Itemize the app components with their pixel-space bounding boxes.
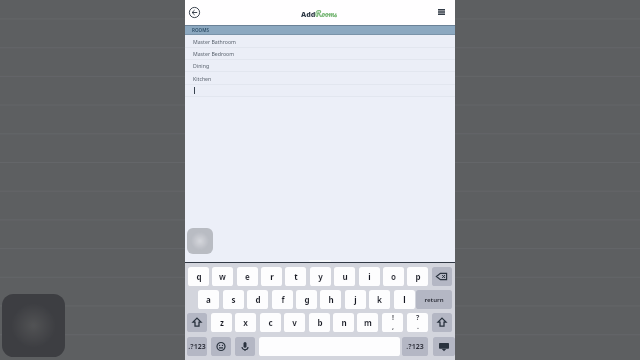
staticText: Rooms <box>315 7 338 20</box>
staticText: ? <box>416 313 420 323</box>
button[interactable]: Master Bedroom <box>185 47 455 59</box>
button[interactable]: o <box>383 267 404 286</box>
staticText: q <box>196 271 202 282</box>
staticText: r <box>270 271 274 282</box>
button[interactable]: App icon <box>2 294 65 357</box>
staticText: return <box>424 296 444 304</box>
staticText: Kitchen <box>193 75 212 82</box>
button[interactable]: Master Bathroom <box>185 35 455 47</box>
button[interactable]: f <box>272 290 293 309</box>
button[interactable]: ? <box>407 313 428 332</box>
staticText: . <box>417 322 419 331</box>
button[interactable]: x <box>235 313 256 332</box>
button[interactable]: Voice input <box>235 337 255 356</box>
button[interactable]: Back <box>188 6 201 19</box>
button[interactable]: Backspace <box>432 267 452 286</box>
staticText: l <box>403 294 406 305</box>
button[interactable]: return <box>416 290 452 309</box>
button[interactable]: l <box>394 290 415 309</box>
staticText: k <box>377 294 382 305</box>
button[interactable]: Emoji <box>211 337 231 356</box>
staticText: c <box>268 317 273 328</box>
staticText: s <box>231 294 236 305</box>
button[interactable]: q <box>188 267 209 286</box>
staticText: ! <box>392 313 394 323</box>
staticText: e <box>245 271 250 282</box>
staticText: Add <box>301 9 316 19</box>
button[interactable]: c <box>260 313 281 332</box>
button[interactable]: Menu <box>434 5 448 19</box>
staticText: j <box>354 294 357 305</box>
staticText: t <box>294 271 298 282</box>
button[interactable]: i <box>359 267 380 286</box>
button[interactable]: h <box>320 290 341 309</box>
button[interactable]: w <box>212 267 233 286</box>
button[interactable]: v <box>284 313 305 332</box>
button[interactable]: Photo placeholder <box>187 228 213 254</box>
button[interactable]: z <box>211 313 232 332</box>
staticText: ROOMS <box>192 27 209 33</box>
staticText: h <box>328 294 334 305</box>
button[interactable]: j <box>345 290 366 309</box>
staticText: .?123 <box>406 342 424 352</box>
staticText: Master Bedroom <box>193 50 235 57</box>
staticText: w <box>219 271 226 282</box>
button[interactable]: Kitchen <box>185 72 455 84</box>
button[interactable]: y <box>310 267 331 286</box>
button[interactable]: d <box>247 290 268 309</box>
button[interactable]: .?123 <box>187 337 207 356</box>
button[interactable]: n <box>333 313 354 332</box>
staticText: i <box>368 271 371 282</box>
button[interactable]: r <box>261 267 282 286</box>
button[interactable]: m <box>357 313 378 332</box>
staticText: v <box>292 317 297 328</box>
staticText: x <box>243 317 248 328</box>
button[interactable]: .?123 <box>402 337 428 356</box>
button[interactable]: p <box>407 267 428 286</box>
button[interactable]: Hide keyboard <box>433 337 455 356</box>
button[interactable]: b <box>309 313 330 332</box>
button[interactable]: ! <box>382 313 403 332</box>
staticText: u <box>342 271 348 282</box>
staticText: Dining <box>193 62 210 69</box>
button[interactable]: Dining <box>185 59 455 71</box>
staticText: y <box>318 271 323 282</box>
staticText: n <box>341 317 347 328</box>
staticText: g <box>304 294 310 305</box>
button[interactable]: e <box>237 267 258 286</box>
button[interactable]: Shift <box>432 313 452 332</box>
staticText: f <box>281 294 285 305</box>
staticText: .?123 <box>188 342 206 352</box>
staticText: Master Bathroom <box>193 38 236 45</box>
staticText: p <box>415 271 421 282</box>
button[interactable]: k <box>369 290 390 309</box>
button[interactable]: t <box>285 267 306 286</box>
staticText: , <box>392 322 394 331</box>
button[interactable]: a <box>198 290 219 309</box>
button[interactable]: s <box>223 290 244 309</box>
button[interactable]: ROOMS <box>185 26 455 34</box>
button[interactable]: u <box>334 267 355 286</box>
staticText: d <box>255 294 261 305</box>
button[interactable]: Shift <box>187 313 207 332</box>
staticText: o <box>391 271 396 282</box>
staticText: a <box>206 294 211 305</box>
button[interactable]: g <box>296 290 317 309</box>
staticText: b <box>317 317 323 328</box>
staticText: z <box>220 317 224 328</box>
staticText: m <box>364 317 372 328</box>
